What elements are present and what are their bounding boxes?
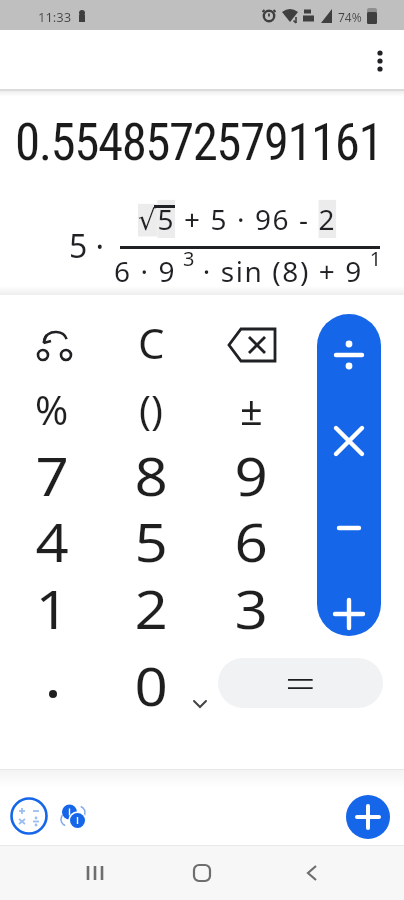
staticText: 0	[134, 649, 168, 713]
button[interactable]	[317, 574, 381, 654]
staticText: 2	[134, 572, 168, 636]
button[interactable]: 5	[106, 505, 196, 569]
button[interactable]: 8	[106, 439, 196, 503]
button[interactable]: =	[218, 658, 383, 708]
staticText: 5	[134, 505, 168, 569]
button[interactable]: 6	[206, 505, 296, 569]
staticText: =	[285, 658, 316, 705]
button[interactable]	[362, 44, 398, 80]
button[interactable]	[317, 488, 381, 568]
button[interactable]: ()	[106, 377, 196, 441]
button[interactable]	[7, 650, 97, 714]
staticText: 11:33	[38, 8, 72, 26]
staticText: 74%	[338, 9, 362, 25]
button[interactable]: C	[106, 310, 196, 374]
button[interactable]	[58, 801, 88, 831]
staticText: 5 ·	[69, 224, 105, 268]
staticText: 9	[234, 439, 268, 503]
button[interactable]: 7	[7, 439, 97, 503]
button[interactable]	[186, 692, 214, 716]
button[interactable]	[20, 313, 90, 377]
staticText: C	[138, 314, 165, 371]
staticText: 7	[35, 439, 69, 503]
button[interactable]	[294, 855, 330, 891]
button[interactable]: 9	[206, 439, 296, 503]
button[interactable]	[9, 796, 49, 836]
staticText: 4	[35, 505, 69, 569]
staticText: ±	[240, 382, 263, 436]
button[interactable]: 3	[206, 572, 296, 636]
button[interactable]: %	[7, 377, 97, 441]
button[interactable]	[184, 855, 220, 891]
button[interactable]: 4	[7, 505, 97, 569]
staticText: 1	[35, 572, 69, 636]
button[interactable]	[317, 315, 381, 395]
staticText: ()	[139, 382, 163, 436]
button[interactable]: 2	[106, 572, 196, 636]
button[interactable]: 0	[106, 649, 196, 713]
button[interactable]: 1	[7, 572, 97, 636]
button[interactable]	[346, 795, 390, 839]
staticText: 6	[234, 505, 268, 569]
staticText: √5 + 5 · 96 - 2	[138, 200, 337, 238]
staticText: 3	[234, 572, 268, 636]
button[interactable]	[216, 313, 286, 377]
staticText: 8	[134, 439, 168, 503]
staticText: %	[35, 382, 69, 436]
staticText: 6 · 9 3 · sin (8) + 9 1	[114, 245, 383, 290]
button[interactable]	[317, 401, 381, 481]
button[interactable]: ±	[206, 377, 296, 441]
button[interactable]	[77, 855, 113, 891]
staticText: 0.55485725791161	[15, 113, 383, 173]
